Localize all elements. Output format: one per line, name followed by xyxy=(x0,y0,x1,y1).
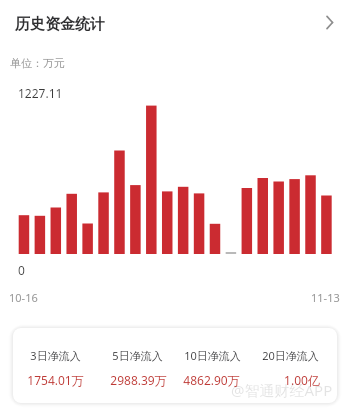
staticText: 0 xyxy=(18,262,25,278)
staticText: 1.00亿 xyxy=(284,372,320,388)
staticText: 2988.39万 xyxy=(110,372,167,388)
staticText: 3日净流入 xyxy=(30,348,81,363)
staticText: 1227.11 xyxy=(18,85,63,101)
button[interactable]: 5日净流入 xyxy=(95,328,179,403)
button[interactable]: 20日净流入 xyxy=(248,328,332,403)
staticText: 20日净流入 xyxy=(262,348,319,363)
button[interactable]: 更多 xyxy=(322,11,345,34)
staticText: 5日净流入 xyxy=(112,348,163,363)
staticText: 11-13 xyxy=(311,290,340,305)
staticText: @智通财经APP xyxy=(231,380,333,400)
staticText: 10-16 xyxy=(9,290,38,305)
staticText: 10日净流入 xyxy=(184,348,241,363)
button[interactable]: 10日净流入 xyxy=(170,328,254,403)
staticText: 单位：万元 xyxy=(10,56,65,70)
button[interactable]: 历史资金统计 xyxy=(0,0,350,46)
staticText: 4862.90万 xyxy=(183,372,240,388)
staticText: 1754.01万 xyxy=(27,372,84,388)
button[interactable]: 3日净流入 xyxy=(13,328,97,403)
staticText: 历史资金统计 xyxy=(15,15,105,34)
